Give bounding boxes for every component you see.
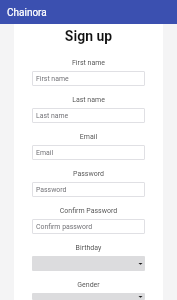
button[interactable]: Password (32, 182, 145, 197)
button[interactable]: Last name (32, 108, 145, 123)
staticText: Confirm Password (32, 207, 145, 215)
button[interactable]: Gender (32, 293, 145, 300)
button[interactable]: Birthday (32, 256, 145, 271)
staticText: Last name (32, 96, 145, 104)
staticText: Chainora (7, 7, 47, 19)
staticText: First name (36, 75, 69, 83)
staticText: Email (36, 149, 54, 157)
staticText: Email (32, 133, 145, 141)
staticText: First name (32, 59, 145, 67)
staticText: Password (36, 186, 67, 194)
staticText: Sign up (32, 28, 145, 44)
button[interactable]: Confirm password (32, 219, 145, 234)
staticText: Last name (36, 112, 69, 120)
staticText: Gender (32, 281, 145, 289)
button[interactable]: First name (32, 71, 145, 86)
staticText: Birthday (32, 244, 145, 252)
staticText: Password (32, 170, 145, 178)
button[interactable]: Email (32, 145, 145, 160)
staticText: Confirm password (36, 223, 93, 231)
